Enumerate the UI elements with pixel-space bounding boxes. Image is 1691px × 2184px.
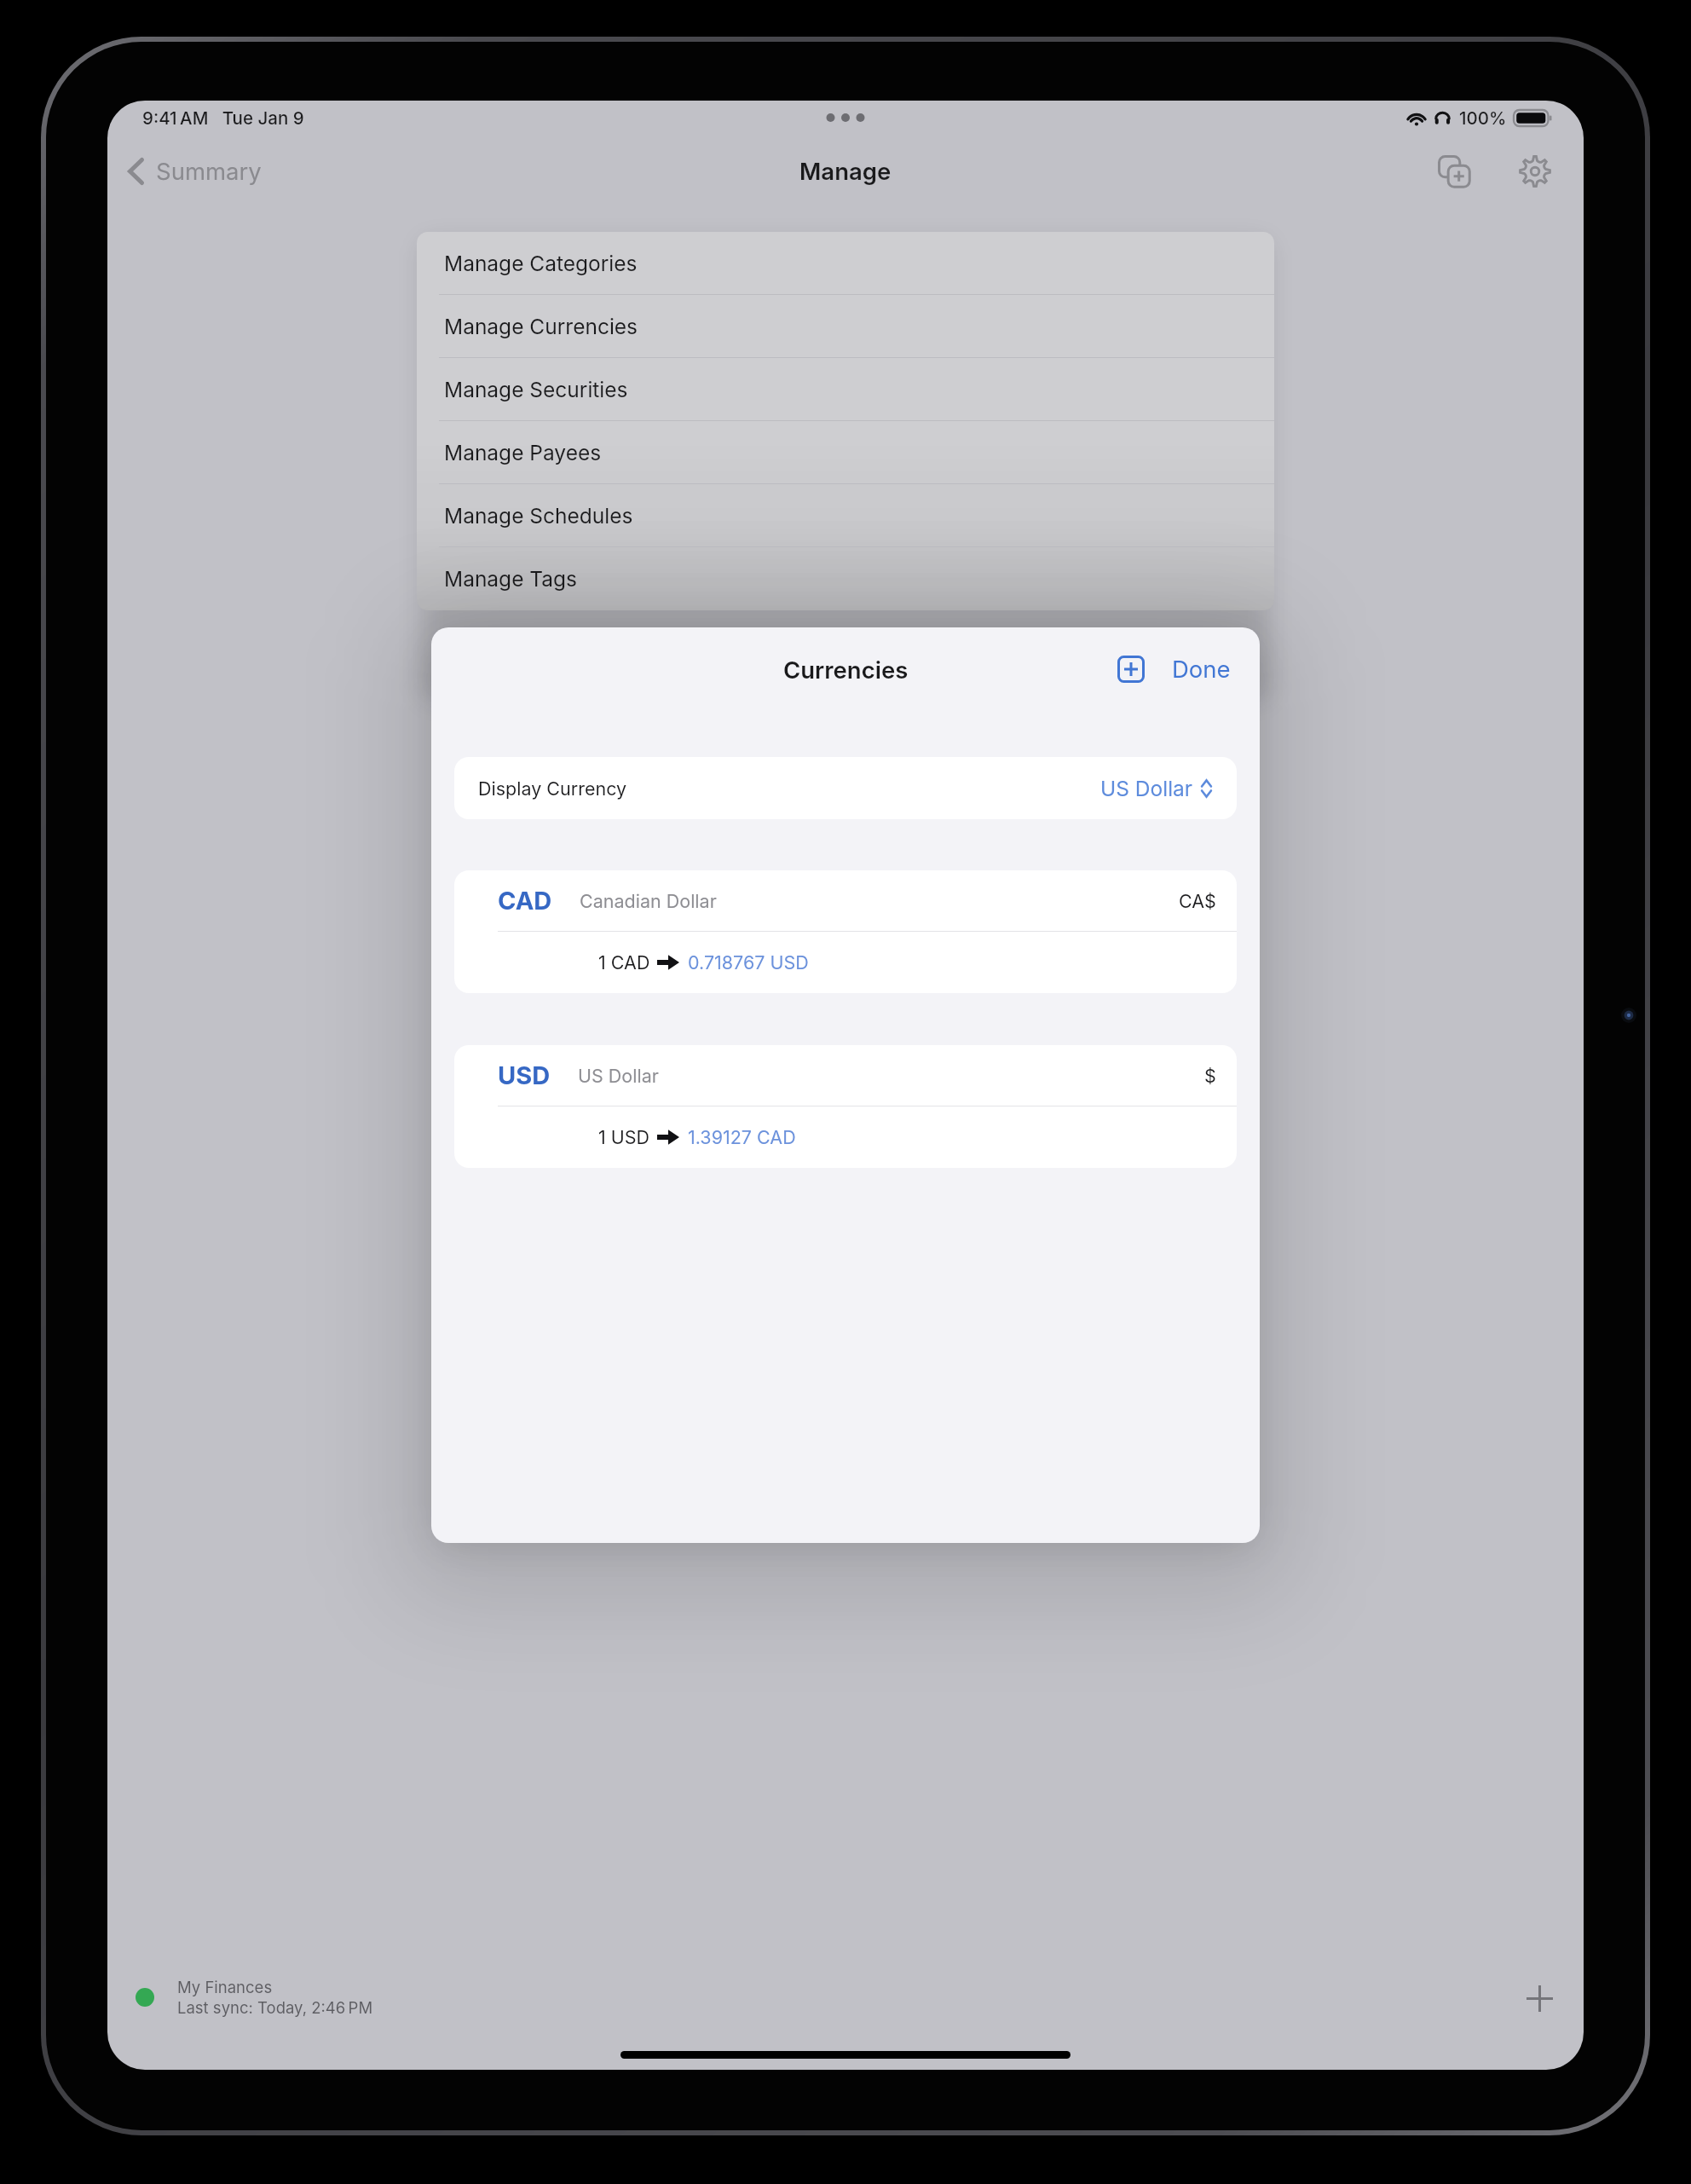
button[interactable]: Manage Currencies xyxy=(417,295,1274,358)
staticText: US Dollar xyxy=(1100,776,1193,801)
staticText: Manage xyxy=(799,157,892,185)
staticText: 1.39127 CAD xyxy=(688,1126,796,1148)
button[interactable]: CAD xyxy=(454,870,1237,993)
button[interactable]: Manage Payees xyxy=(417,421,1274,484)
button[interactable]: Summary xyxy=(115,148,274,194)
staticText: USD xyxy=(498,1060,551,1090)
staticText: 1 CAD xyxy=(598,951,650,974)
staticText: Done xyxy=(1172,655,1231,683)
button[interactable]: Settings xyxy=(1502,138,1568,205)
staticText: Summary xyxy=(156,157,262,185)
button[interactable]: Manage Tags xyxy=(417,547,1274,610)
button[interactable]: Display Currency xyxy=(454,757,1237,819)
staticText: Canadian Dollar xyxy=(580,890,717,912)
button[interactable]: Manage Securities xyxy=(417,358,1274,421)
button[interactable]: Done xyxy=(1167,648,1236,690)
staticText: 1 USD xyxy=(598,1126,650,1148)
staticText: 9:41 AM Tue Jan 9 xyxy=(142,107,304,129)
button[interactable]: Add xyxy=(1510,1969,1568,2027)
staticText: 100% xyxy=(1459,107,1507,129)
button[interactable]: Manage Schedules xyxy=(417,484,1274,547)
staticText: US Dollar xyxy=(578,1065,659,1087)
staticText: Manage Categories xyxy=(444,251,638,276)
staticText: CA$ xyxy=(1179,890,1216,912)
staticText: $ xyxy=(1204,1065,1216,1087)
staticText: Manage Payees xyxy=(444,440,602,465)
staticText: Manage Schedules xyxy=(444,503,633,529)
staticText: CAD xyxy=(498,886,552,916)
button[interactable]: Manage Categories xyxy=(417,232,1274,295)
staticText: Manage Securities xyxy=(444,377,628,402)
staticText: Display Currency xyxy=(478,777,627,800)
staticText: My Finances xyxy=(177,1978,273,1996)
staticText: Manage Currencies xyxy=(444,314,638,339)
button[interactable]: USD xyxy=(454,1045,1237,1168)
staticText: Manage Tags xyxy=(444,566,578,592)
staticText: 0.718767 USD xyxy=(688,951,809,974)
button[interactable]: New window xyxy=(1421,138,1487,205)
button[interactable]: Add currency xyxy=(1111,649,1151,690)
staticText: Currencies xyxy=(783,656,909,684)
button[interactable]: My Finances xyxy=(118,1964,390,2031)
staticText: Last sync: Today, 2:46 PM xyxy=(177,1998,373,2017)
